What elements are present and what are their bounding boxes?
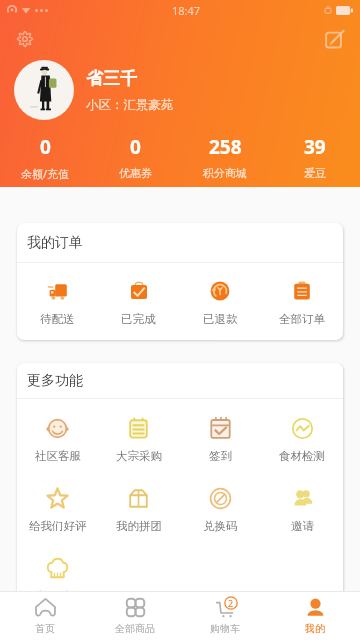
- button[interactable]: 2: [180, 592, 270, 640]
- button[interactable]: 我的拼团: [98, 487, 179, 533]
- button[interactable]: 签到: [179, 417, 261, 463]
- button[interactable]: 0: [90, 134, 180, 180]
- button[interactable]: 全部商品: [90, 592, 180, 640]
- button[interactable]: Settings: [11, 25, 39, 53]
- button[interactable]: 待配送: [17, 281, 98, 326]
- staticText: 小区：汇景豪苑: [86, 97, 174, 113]
- staticText: 首页: [35, 622, 55, 635]
- staticText: 社区客服: [35, 449, 81, 463]
- staticText: 已完成: [121, 312, 156, 326]
- button[interactable]: 0: [0, 134, 90, 181]
- staticText: 39: [304, 134, 326, 160]
- staticText: 待配送: [40, 312, 75, 326]
- staticText: 已退款: [203, 312, 238, 326]
- staticText: 邀请: [291, 519, 314, 533]
- staticText: 购物车: [210, 622, 240, 635]
- staticText: 意见反馈: [35, 589, 81, 603]
- button[interactable]: 给我们好评: [17, 487, 98, 533]
- staticText: 给我们好评: [29, 519, 87, 533]
- staticText: 优惠券: [119, 166, 152, 180]
- button[interactable]: 社区客服: [17, 417, 98, 463]
- button[interactable]: 大宗采购: [98, 417, 179, 463]
- button[interactable]: 食材检测: [261, 417, 343, 463]
- staticText: 全部商品: [115, 622, 155, 635]
- button[interactable]: 全部订单: [261, 281, 343, 326]
- staticText: 全部订单: [279, 312, 325, 326]
- staticText: 省三千: [86, 68, 137, 89]
- staticText: 0: [40, 134, 51, 160]
- button[interactable]: 首页: [0, 592, 90, 640]
- button[interactable]: 258: [180, 134, 270, 180]
- staticText: 大宗采购: [116, 449, 162, 463]
- button[interactable]: 已完成: [98, 281, 179, 326]
- staticText: 0: [130, 134, 141, 160]
- staticText: 兑换码: [203, 519, 238, 533]
- button[interactable]: 邀请: [261, 487, 343, 533]
- staticText: 我的订单: [27, 234, 83, 252]
- staticText: 食材检测: [279, 449, 325, 463]
- button[interactable]: 意见反馈: [17, 557, 98, 603]
- staticText: 余额/充值: [21, 166, 70, 181]
- staticText: 我的: [305, 622, 325, 635]
- staticText: 18:47: [172, 3, 201, 18]
- staticText: 258: [209, 134, 242, 160]
- button[interactable]: Edit profile: [320, 25, 348, 53]
- staticText: 爱豆: [304, 166, 326, 180]
- button[interactable]: 39: [270, 134, 360, 180]
- staticText: 更多功能: [27, 372, 83, 390]
- staticText: 2: [228, 597, 234, 609]
- staticText: 我的拼团: [116, 519, 162, 533]
- button[interactable]: 我的: [270, 592, 360, 640]
- button[interactable]: 兑换码: [179, 487, 261, 533]
- button[interactable]: 省三千: [14, 60, 174, 120]
- button[interactable]: 已退款: [179, 281, 261, 326]
- staticText: 积分商城: [203, 166, 247, 180]
- staticText: 签到: [209, 449, 232, 463]
